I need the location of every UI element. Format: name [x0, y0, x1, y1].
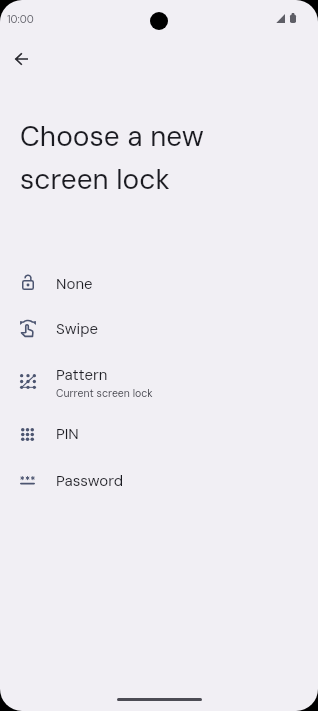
button[interactable]: Password — [0, 459, 318, 711]
button[interactable]: PIN — [0, 412, 318, 711]
staticText: Choose a new screen lock — [20, 113, 204, 199]
button[interactable]: Pattern — [0, 354, 318, 711]
staticText: Current screen lock — [56, 389, 153, 400]
staticText: Password — [56, 474, 124, 489]
staticText: 10:00 — [7, 12, 34, 26]
staticText: Pattern — [56, 368, 108, 383]
button[interactable]: Back — [5, 42, 38, 75]
button[interactable]: Swipe — [0, 307, 318, 711]
staticText: None — [56, 277, 93, 292]
staticText: Swipe — [56, 322, 99, 337]
button[interactable]: None — [0, 262, 318, 711]
staticText: PIN — [56, 427, 79, 442]
